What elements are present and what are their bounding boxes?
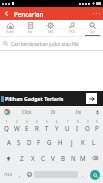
staticText: 3 <box>26 120 28 124</box>
button[interactable]: M <box>78 150 88 166</box>
staticText: 0 <box>96 120 98 124</box>
staticText: A <box>7 138 11 146</box>
button[interactable]: G <box>44 134 55 150</box>
staticText: Y <box>55 124 59 132</box>
staticText: 2 <box>16 120 18 124</box>
staticText: Cari berdasarkan judul atau file <box>11 41 79 47</box>
staticText: 9 <box>87 120 89 124</box>
button[interactable]: ?123 <box>1 166 15 183</box>
staticText: X <box>31 154 35 162</box>
staticText: , <box>19 171 21 179</box>
staticText: Pencarian <box>14 10 44 18</box>
staticText: B <box>61 154 66 162</box>
button[interactable]: Z <box>16 150 27 166</box>
button[interactable]: D <box>24 134 34 150</box>
staticText: H <box>58 138 63 146</box>
button[interactable]: Ini <box>66 106 92 118</box>
button[interactable]: C <box>38 150 48 166</box>
button[interactable]: Home <box>0 20 20 36</box>
staticText: 8 <box>77 120 79 124</box>
button[interactable]: F <box>34 134 44 150</box>
staticText: J <box>71 138 73 146</box>
staticText: Pilihan Gadget Terlaris <box>5 95 64 102</box>
staticText: D <box>27 138 32 146</box>
staticText: Cari <box>90 30 95 34</box>
staticText: F <box>37 138 41 146</box>
staticText: MRC <box>48 30 54 34</box>
button[interactable]: B <box>58 150 68 166</box>
staticText: S <box>17 138 21 146</box>
button[interactable]: S <box>14 134 24 150</box>
staticText: Di <box>51 109 56 115</box>
button[interactable]: 0 <box>92 118 102 134</box>
staticText: C <box>41 154 45 162</box>
staticText: R <box>35 124 39 132</box>
button[interactable]: 6 <box>52 118 62 134</box>
staticText: G <box>47 138 52 146</box>
button[interactable]: V <box>48 150 58 166</box>
staticText: 6 <box>56 120 58 124</box>
button[interactable]: Open <box>86 93 97 104</box>
button[interactable]: Emoji <box>24 166 34 183</box>
button[interactable]: K <box>77 134 88 150</box>
staticText: M <box>80 154 86 162</box>
button[interactable]: Click <box>13 106 40 118</box>
staticText: L <box>92 138 96 146</box>
staticText: PKU <box>69 30 75 34</box>
button[interactable]: A <box>4 134 14 150</box>
staticText: Click <box>22 109 32 115</box>
staticText: O <box>85 124 90 132</box>
button[interactable]: 9 <box>82 118 92 134</box>
staticText: Q <box>4 124 9 132</box>
staticText: N <box>71 154 76 162</box>
staticText: 5 <box>46 120 48 124</box>
button[interactable]: Di <box>40 106 66 118</box>
button[interactable]: L <box>88 134 99 150</box>
button[interactable]: Back <box>0 7 13 20</box>
button[interactable]: N <box>68 150 78 166</box>
button[interactable]: MRC <box>40 20 61 36</box>
staticText: W <box>14 124 20 132</box>
button[interactable]: PKU <box>61 20 82 36</box>
staticText: ?123 <box>4 172 12 177</box>
staticText: U <box>65 124 70 132</box>
staticText: ALt <box>28 30 32 34</box>
button[interactable]: Backspace <box>88 150 102 166</box>
button[interactable]: 2 <box>12 118 22 134</box>
staticText: 7 <box>67 120 69 124</box>
button[interactable]: Search <box>90 170 100 180</box>
button[interactable]: . <box>78 166 87 183</box>
staticText: Home <box>6 30 14 34</box>
button[interactable]: 8 <box>72 118 82 134</box>
staticText: V <box>51 154 55 162</box>
button[interactable]: ALt <box>20 20 40 36</box>
button[interactable]: More options <box>90 7 103 20</box>
button[interactable]: Cari berdasarkan judul atau file <box>0 37 103 50</box>
button[interactable]: 7 <box>62 118 72 134</box>
button[interactable]: Google <box>0 106 13 118</box>
staticText: . <box>82 171 84 179</box>
button[interactable]: H <box>55 134 66 150</box>
staticText: Z <box>20 154 24 162</box>
staticText: Ini <box>76 109 82 115</box>
staticText: 4 <box>36 120 38 124</box>
button[interactable]: Voice input <box>92 106 103 118</box>
staticText: E <box>25 124 29 132</box>
button[interactable]: Cari <box>82 20 103 36</box>
button[interactable]: 3 <box>22 118 32 134</box>
staticText: K <box>81 138 85 146</box>
staticText: T <box>45 124 49 132</box>
button[interactable]: 1 <box>1 118 12 134</box>
button[interactable]: , <box>15 166 24 183</box>
button[interactable]: 4 <box>32 118 42 134</box>
button[interactable]: J <box>66 134 77 150</box>
button[interactable]: X <box>27 150 38 166</box>
staticText: 1 <box>6 120 8 124</box>
button[interactable]: 5 <box>42 118 52 134</box>
button[interactable]: Shift <box>1 150 16 166</box>
staticText: P <box>95 124 99 132</box>
button[interactable]: Pilihan Gadget Terlaris <box>0 91 103 106</box>
staticText: I <box>76 124 79 132</box>
